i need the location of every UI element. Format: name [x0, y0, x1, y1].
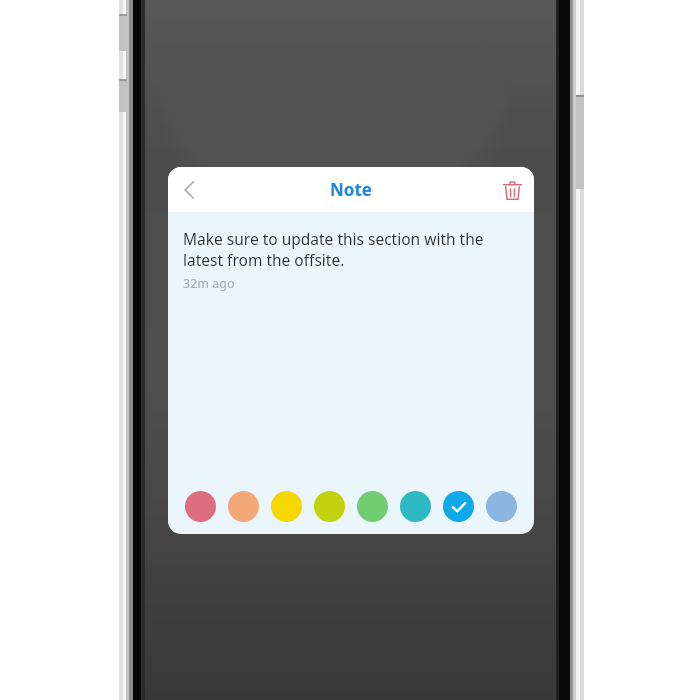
- button[interactable]: Back: [168, 168, 212, 212]
- button[interactable]: Colour 5: [351, 483, 394, 529]
- button[interactable]: Colour 7: [437, 483, 480, 529]
- button[interactable]: Colour 4: [308, 483, 351, 529]
- button[interactable]: Colour 1: [179, 483, 222, 529]
- button[interactable]: Colour 6: [394, 483, 437, 529]
- button[interactable]: Delete note: [490, 168, 534, 212]
- button[interactable]: Colour 2: [222, 483, 265, 529]
- button[interactable]: Colour 3: [265, 483, 308, 529]
- staticText: Make sure to update this section with th…: [183, 228, 512, 271]
- button[interactable]: Colour 8: [480, 483, 523, 529]
- staticText: 32m ago: [183, 275, 235, 292]
- staticText: Note: [330, 178, 372, 201]
